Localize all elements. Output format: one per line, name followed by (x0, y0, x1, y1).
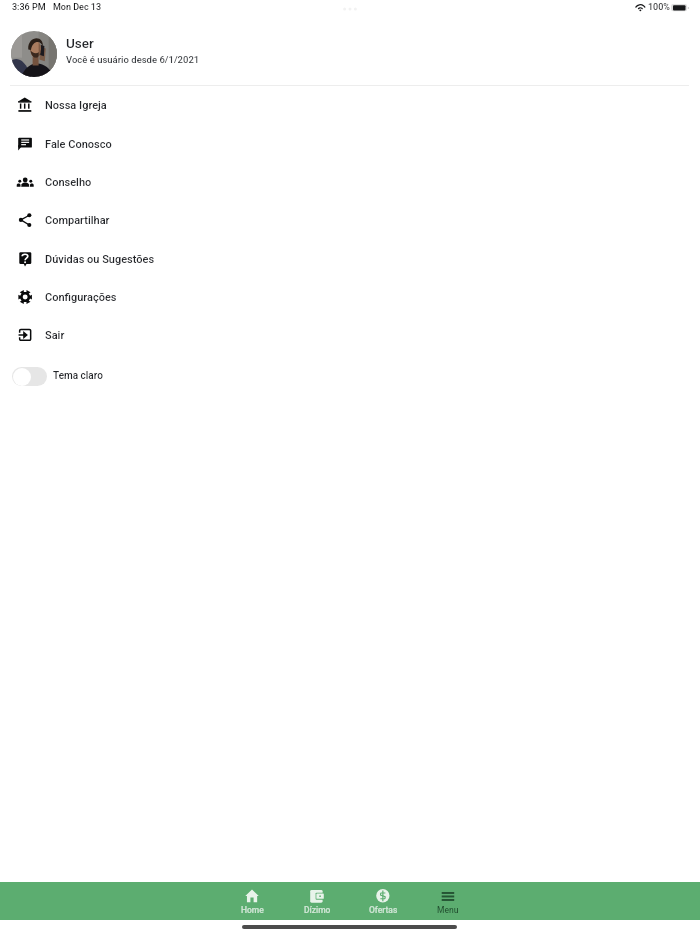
staticText: Tema claro (53, 370, 103, 382)
staticText: Home (241, 905, 264, 915)
button[interactable]: Home (219, 882, 285, 920)
button[interactable]: Nossa Igreja (0, 86, 700, 124)
button[interactable]: Tema claro (0, 355, 700, 397)
staticText: Ofertas (369, 905, 398, 915)
staticText: Você é usuário desde 6/1/2021 (66, 54, 200, 65)
button[interactable]: Conselho (0, 163, 700, 201)
button[interactable]: Dúvidas ou Sugestões (0, 240, 700, 278)
staticText: Compartilhar (45, 214, 110, 227)
button[interactable]: Tema claro (12, 367, 47, 386)
staticText: Dízimo (304, 905, 331, 915)
staticText: Sair (45, 329, 65, 342)
staticText: 3:36 PM (12, 2, 46, 13)
staticText: Dúvidas ou Sugestões (45, 253, 155, 266)
staticText: Conselho (45, 176, 92, 189)
button[interactable]: Configurações (0, 278, 700, 316)
button[interactable]: Menu (415, 882, 481, 920)
button[interactable]: Compartilhar (0, 201, 700, 239)
button[interactable]: Ofertas (350, 882, 416, 920)
staticText: Nossa Igreja (45, 99, 107, 112)
button[interactable]: Dízimo (284, 882, 350, 920)
staticText: User (66, 35, 94, 51)
staticText: 100% (648, 2, 670, 13)
staticText: Menu (437, 905, 459, 915)
button[interactable]: Fale Conosco (0, 125, 700, 163)
staticText: Configurações (45, 291, 117, 304)
button[interactable]: User (0, 20, 700, 85)
button[interactable]: Sair (0, 316, 700, 354)
staticText: Fale Conosco (45, 138, 112, 151)
staticText: Mon Dec 13 (53, 2, 102, 13)
